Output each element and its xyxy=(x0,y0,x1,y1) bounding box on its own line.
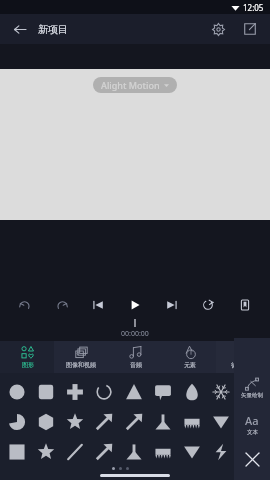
button[interactable]: Shape 23 xyxy=(208,439,234,465)
button[interactable]: Skip to end xyxy=(159,292,185,318)
button[interactable]: Shape 12 xyxy=(121,409,147,435)
button[interactable]: Shape 15 xyxy=(208,409,234,435)
button[interactable]: Shape 17 xyxy=(33,439,59,465)
staticText: 矢量绘制 xyxy=(241,392,263,399)
button[interactable]: Skip to start xyxy=(85,292,111,318)
button[interactable]: Export xyxy=(238,17,262,41)
button[interactable]: Play xyxy=(122,292,148,318)
button[interactable]: Shape 19 xyxy=(91,439,117,465)
staticText: 徒手绘制 xyxy=(231,361,255,369)
staticText: 文本 xyxy=(247,429,258,436)
button[interactable]: Shape 2 xyxy=(62,379,88,405)
button[interactable]: Shape 11 xyxy=(91,409,117,435)
button[interactable]: 元素 xyxy=(162,341,216,373)
button[interactable]: Shape 5 xyxy=(150,379,176,405)
button[interactable]: 矢量绘制 xyxy=(234,370,270,406)
button[interactable]: Alight Motion xyxy=(93,77,177,93)
button[interactable]: Shape 9 xyxy=(33,409,59,435)
button[interactable]: Close xyxy=(234,442,270,476)
button[interactable]: Shape 22 xyxy=(179,439,205,465)
button[interactable]: Shape 1 xyxy=(33,379,59,405)
button[interactable]: Shape 8 xyxy=(4,409,30,435)
button[interactable]: Shape 7 xyxy=(208,379,234,405)
button[interactable]: Settings xyxy=(206,17,230,41)
staticText: 音频 xyxy=(130,361,142,369)
button[interactable]: 图像和视频 xyxy=(54,341,108,373)
button[interactable]: Shape 6 xyxy=(179,379,205,405)
button[interactable]: Bookmark xyxy=(232,292,258,318)
staticText: 12:05 xyxy=(243,2,264,13)
staticText: 图像和视频 xyxy=(66,361,96,369)
button[interactable]: 音频 xyxy=(108,341,162,373)
button[interactable]: Shape 14 xyxy=(179,409,205,435)
button[interactable]: Undo xyxy=(12,292,38,318)
button[interactable]: Loop xyxy=(195,292,221,318)
button[interactable]: Shape 0 xyxy=(4,379,30,405)
staticText: Alight Motion xyxy=(101,79,160,91)
button[interactable]: 图形 xyxy=(0,341,54,373)
staticText: 元素 xyxy=(184,361,196,369)
button[interactable]: Shape 4 xyxy=(121,379,147,405)
button[interactable]: Shape 16 xyxy=(4,439,30,465)
button[interactable]: Redo xyxy=(49,292,75,318)
button[interactable]: Shape 3 xyxy=(91,379,117,405)
button[interactable]: Shape 10 xyxy=(62,409,88,435)
button[interactable]: Shape 21 xyxy=(150,439,176,465)
staticText: Aa xyxy=(245,413,259,428)
button[interactable]: Shape 18 xyxy=(62,439,88,465)
staticText: 00:00:00 xyxy=(121,329,149,339)
button[interactable]: Back xyxy=(8,18,30,40)
staticText: 图形 xyxy=(22,361,34,369)
button[interactable]: Shape 20 xyxy=(121,439,147,465)
button[interactable]: 徒手绘制 xyxy=(216,341,270,373)
staticText: 新项目 xyxy=(38,23,68,36)
button[interactable]: Shape 13 xyxy=(150,409,176,435)
button[interactable]: Aa xyxy=(234,406,270,442)
